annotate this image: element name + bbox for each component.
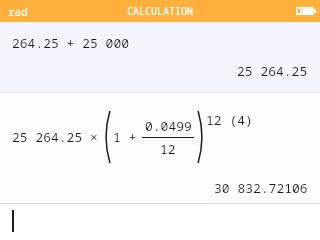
staticText: 12 xyxy=(160,140,176,158)
button[interactable]: rad xyxy=(8,4,28,19)
staticText: CALCULATION xyxy=(127,4,193,18)
staticText: 25 264.25 xyxy=(237,62,308,80)
staticText: 30 832.72106 xyxy=(214,179,308,197)
button[interactable]: Battery xyxy=(296,5,316,17)
staticText: 264.25 + 25 000 xyxy=(12,34,130,52)
button[interactable] xyxy=(0,204,320,240)
button[interactable]: 25 264.25 × xyxy=(0,93,320,203)
staticText: 1 + xyxy=(113,128,137,146)
staticText: 12 (4) xyxy=(206,111,253,129)
button[interactable]: 264.25 + 25 000 xyxy=(0,22,320,92)
staticText: 25 264.25 × xyxy=(12,128,98,146)
staticText: 0.0499 xyxy=(145,117,192,135)
